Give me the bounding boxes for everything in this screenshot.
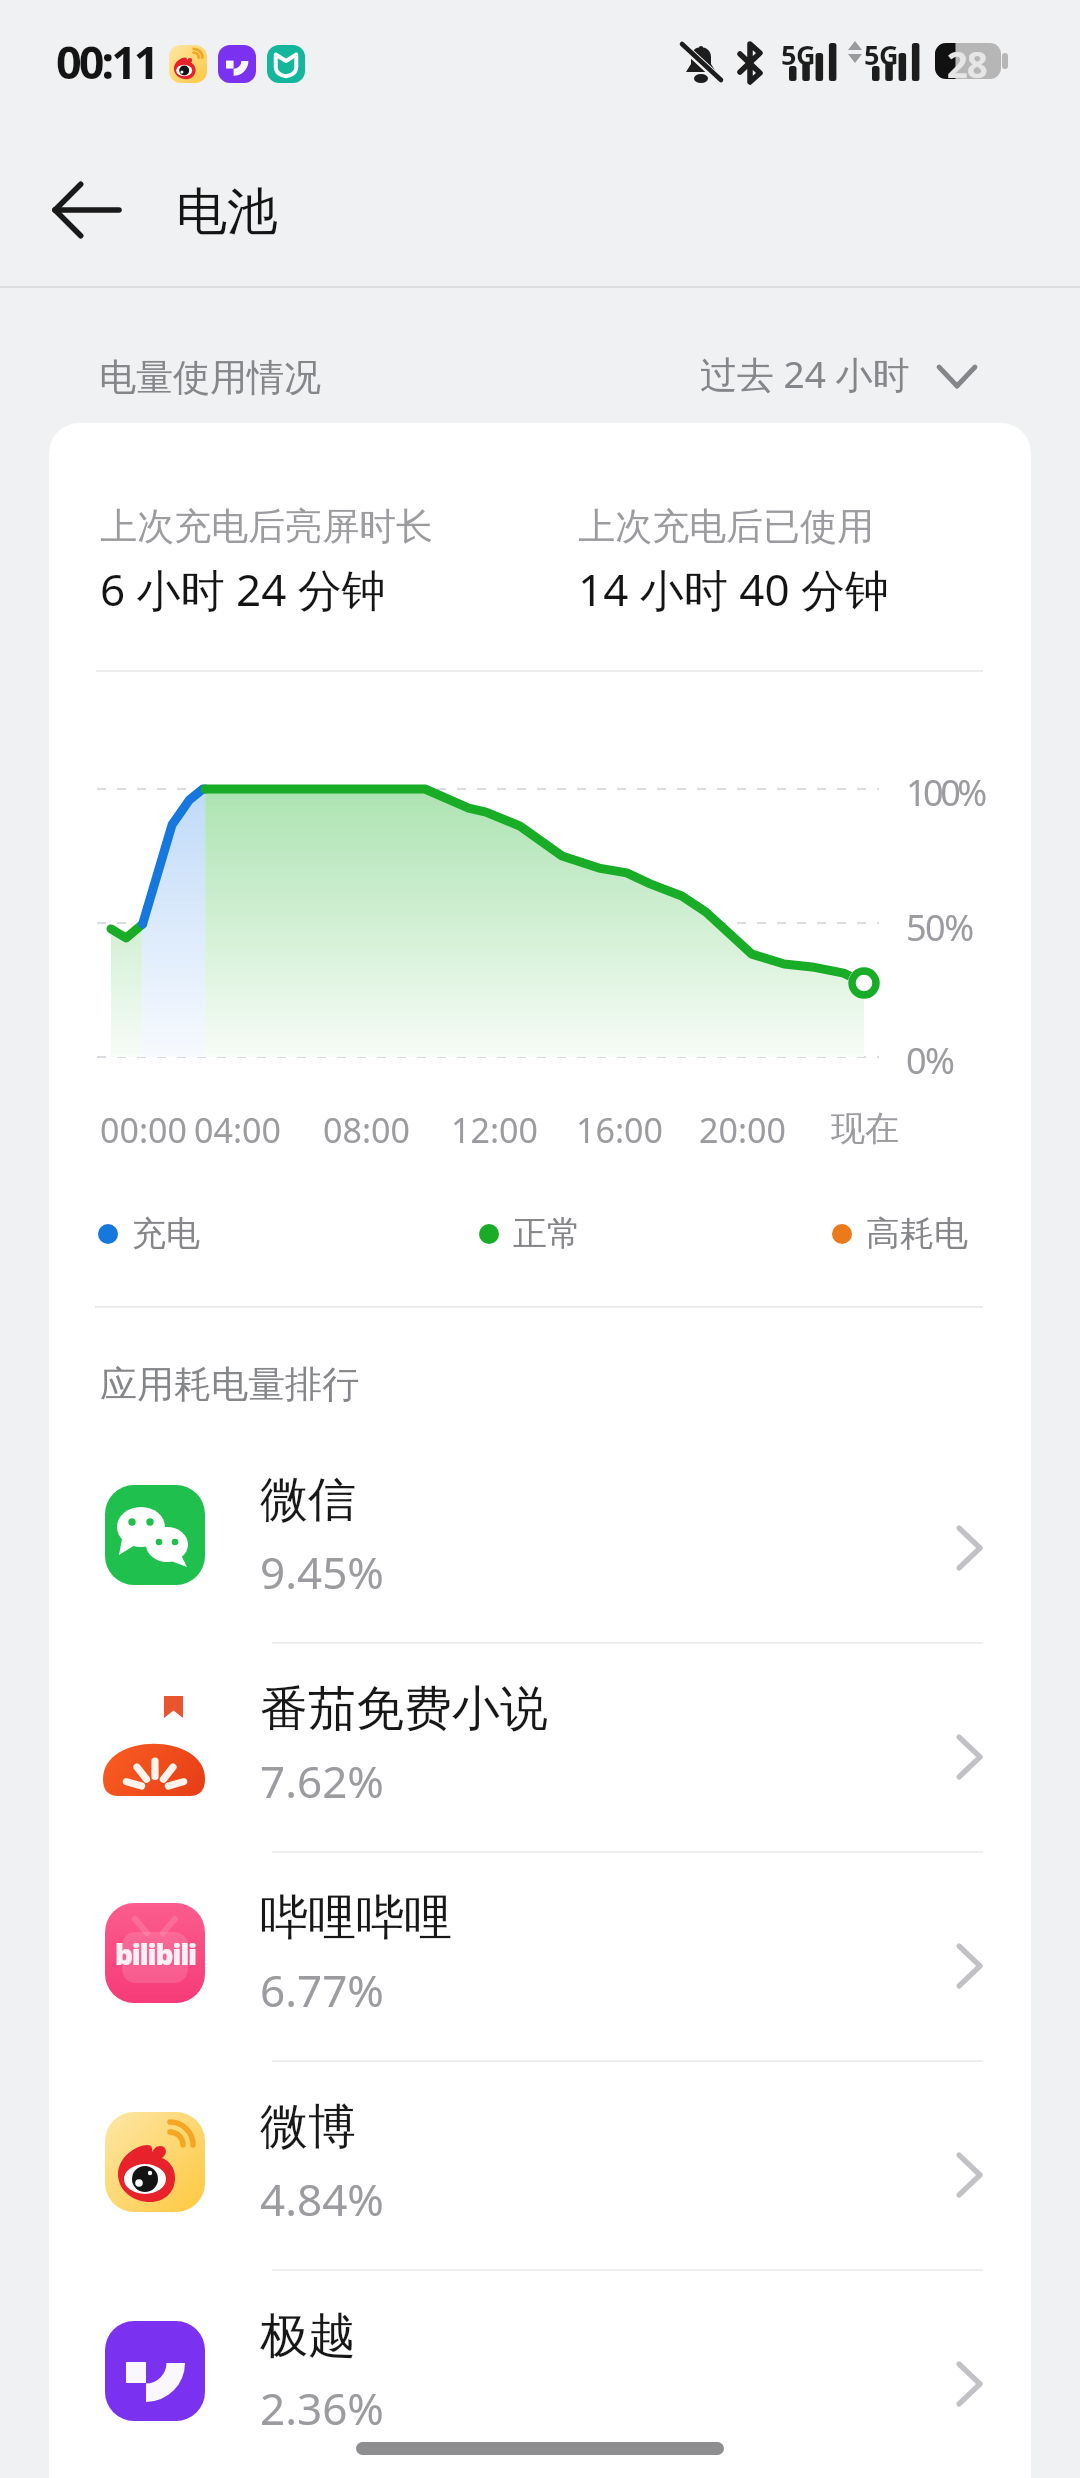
staticText: 电池: [176, 180, 278, 244]
staticText: 6 小时 24 分钟: [100, 559, 386, 619]
staticText: 上次充电后亮屏时长: [100, 503, 433, 550]
staticText: 16:00: [576, 1107, 663, 1153]
staticText: 电量使用情况: [99, 354, 321, 401]
button[interactable]: 番茄免费小说: [49, 1645, 1031, 1854]
staticText: 微信: [260, 1470, 356, 1530]
staticText: 50%: [906, 903, 973, 952]
staticText: 5G: [781, 36, 815, 73]
staticText: 过去 24 小时: [700, 348, 910, 399]
staticText: 应用耗电量排行: [100, 1361, 359, 1408]
staticText: 12:00: [451, 1107, 538, 1153]
button[interactable]: 极越: [49, 2272, 1031, 2478]
staticText: 28: [947, 40, 988, 89]
button[interactable]: 正常: [479, 1212, 581, 1255]
staticText: 高耗电: [866, 1212, 968, 1255]
staticText: bilibili: [115, 1935, 196, 1973]
staticText: 番茄免费小说: [260, 1679, 548, 1739]
button[interactable]: 微信: [49, 1436, 1031, 1645]
staticText: 0%: [906, 1036, 954, 1085]
staticText: 极越: [260, 2306, 356, 2366]
staticText: 5G: [864, 36, 898, 73]
staticText: 08:00: [323, 1107, 410, 1153]
button[interactable]: 微博: [49, 2063, 1031, 2272]
button[interactable]: 充电: [98, 1212, 200, 1255]
staticText: 20:00: [699, 1107, 786, 1153]
staticText: 上次充电后已使用: [578, 503, 874, 550]
button[interactable]: Back: [40, 164, 132, 256]
staticText: 微博: [260, 2097, 356, 2157]
button[interactable]: bilibili: [49, 1854, 1031, 2063]
staticText: 14 小时 40 分钟: [578, 559, 889, 619]
staticText: 哔哩哔哩: [260, 1888, 452, 1948]
staticText: 04:00: [194, 1107, 281, 1153]
staticText: 100%: [906, 768, 984, 817]
staticText: 00:00: [100, 1107, 187, 1153]
button[interactable]: 过去 24 小时: [700, 348, 978, 399]
staticText: 9.45%: [260, 1542, 384, 1602]
button[interactable]: 高耗电: [832, 1212, 968, 1255]
staticText: 7.62%: [260, 1751, 384, 1811]
staticText: 4.84%: [260, 2169, 384, 2229]
staticText: 2.36%: [260, 2378, 384, 2438]
staticText: 现在: [831, 1107, 899, 1150]
staticText: 正常: [513, 1212, 581, 1255]
staticText: 充电: [132, 1212, 200, 1255]
staticText: 6.77%: [260, 1960, 384, 2020]
staticText: 00:11: [56, 31, 157, 92]
